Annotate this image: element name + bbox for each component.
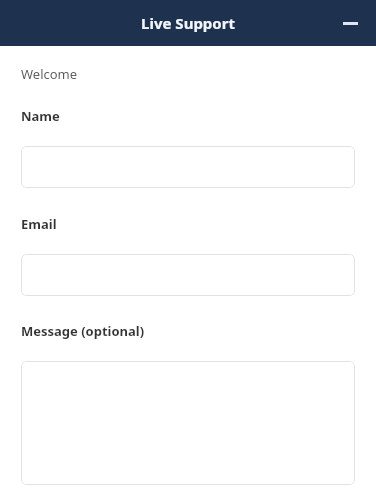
button[interactable]: Minimize bbox=[336, 9, 364, 37]
button[interactable]: Email input bbox=[21, 254, 355, 296]
staticText: Welcome bbox=[21, 65, 78, 83]
staticText: Email bbox=[21, 215, 57, 233]
staticText: Name bbox=[21, 107, 60, 125]
staticText: Message (optional) bbox=[21, 322, 145, 340]
staticText: Live Support bbox=[0, 13, 376, 33]
button[interactable]: Name input bbox=[21, 146, 355, 188]
button[interactable]: Message input bbox=[21, 361, 355, 485]
